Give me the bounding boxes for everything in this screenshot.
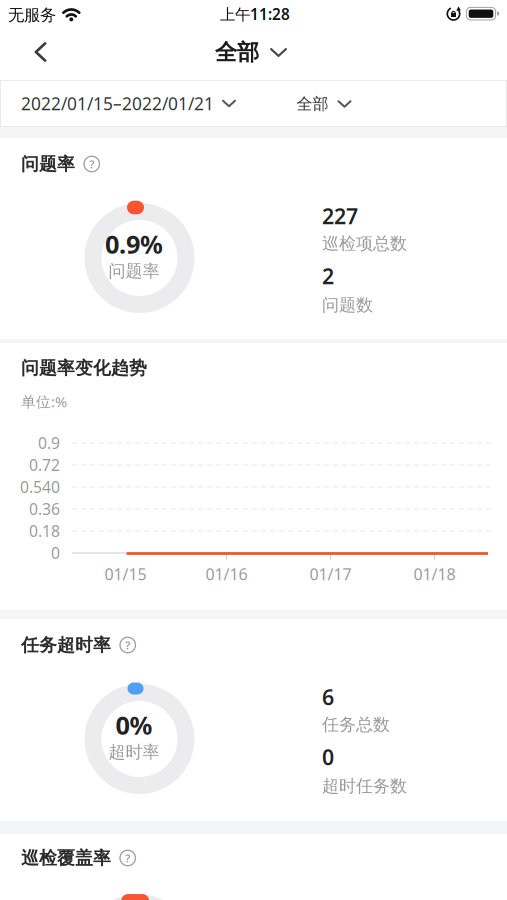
staticText: 任务总数 — [322, 714, 390, 735]
staticText: 01/15 — [104, 563, 146, 585]
staticText: 全部 — [215, 39, 259, 66]
button[interactable]: 全部 — [296, 94, 351, 114]
staticText: 无服务 — [8, 5, 56, 25]
staticText: 问题数 — [322, 294, 373, 316]
staticText: 01/18 — [413, 563, 455, 585]
staticText: ? — [89, 156, 94, 172]
staticText: 6 — [322, 682, 334, 712]
staticText: 0 — [51, 542, 60, 564]
button[interactable]: Back — [24, 37, 56, 67]
staticText: 问题率 — [21, 153, 75, 175]
staticText: 01/16 — [205, 563, 247, 585]
staticText: 0 — [322, 742, 334, 772]
staticText: 全部 — [296, 94, 328, 114]
staticText: 巡检项总数 — [322, 233, 407, 254]
staticText: 0.18 — [29, 520, 60, 542]
button[interactable]: 全部 — [215, 39, 287, 66]
staticText: 上午11:28 — [220, 4, 290, 24]
staticText: ? — [125, 637, 130, 653]
staticText: 0.72 — [29, 454, 60, 476]
staticText: 2022/01/15–2022/01/21 — [21, 92, 214, 115]
staticText: 0.36 — [29, 498, 60, 520]
staticText: 超时率 — [108, 741, 159, 763]
staticText: 任务超时率 — [21, 634, 111, 656]
staticText: 问题率变化趋势 — [21, 357, 147, 379]
staticText: 0.9% — [105, 227, 163, 261]
staticText: 单位:% — [21, 391, 67, 411]
staticText: 2 — [322, 261, 334, 291]
button[interactable]: Help — [120, 850, 135, 866]
staticText: 227 — [322, 201, 358, 231]
button[interactable]: 2022/01/15–2022/01/21 — [21, 92, 236, 115]
staticText: 01/17 — [309, 563, 351, 585]
staticText: ? — [125, 850, 130, 866]
staticText: 0% — [115, 708, 152, 742]
staticText: 超时任务数 — [322, 775, 407, 797]
button[interactable]: Help — [120, 637, 135, 653]
button[interactable]: Help — [84, 156, 99, 172]
staticText: 0.9 — [38, 432, 60, 454]
staticText: 问题率 — [108, 260, 159, 282]
staticText: 巡检覆盖率 — [21, 847, 111, 869]
staticText: 0.540 — [20, 476, 60, 498]
